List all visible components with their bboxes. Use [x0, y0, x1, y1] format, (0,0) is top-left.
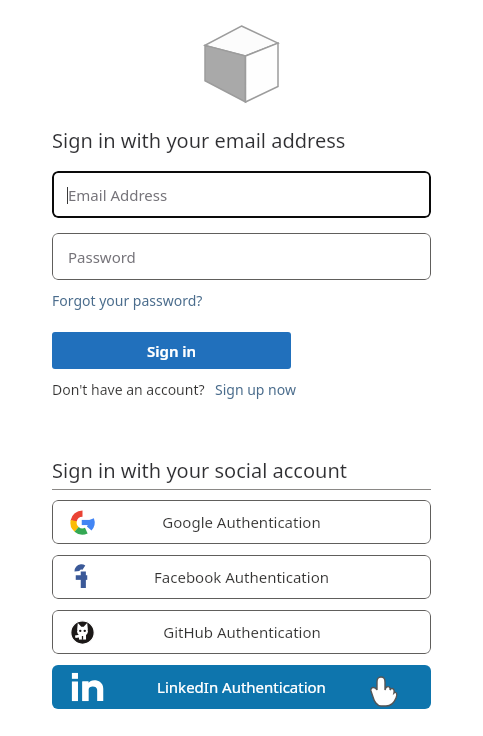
button[interactable]: Sign in: [52, 332, 291, 369]
staticText: Facebook Authentication: [154, 567, 329, 587]
staticText: GitHub Authentication: [163, 622, 321, 642]
button[interactable]: Google Authentication: [52, 500, 431, 544]
button[interactable]: GitHub Authentication: [52, 610, 431, 654]
staticText: Sign in: [147, 341, 197, 361]
staticText: Forgot your password?: [52, 291, 203, 310]
staticText: Password: [68, 247, 136, 267]
button[interactable]: Sign up now: [215, 380, 296, 399]
button[interactable]: Forgot your password?: [52, 291, 203, 310]
staticText: Google Authentication: [162, 512, 321, 532]
staticText: Sign in with your email address: [52, 127, 346, 154]
staticText: Email Address: [68, 185, 168, 205]
staticText: Sign up now: [215, 380, 296, 399]
button[interactable]: Facebook Authentication: [52, 555, 431, 599]
button[interactable]: LinkedIn Authentication: [52, 665, 431, 709]
staticText: Don't have an account?: [52, 380, 205, 399]
staticText: LinkedIn Authentication: [157, 677, 326, 697]
staticText: Sign in with your social account: [52, 457, 347, 484]
button[interactable]: Password: [52, 233, 431, 280]
button[interactable]: Email Address: [52, 171, 431, 218]
